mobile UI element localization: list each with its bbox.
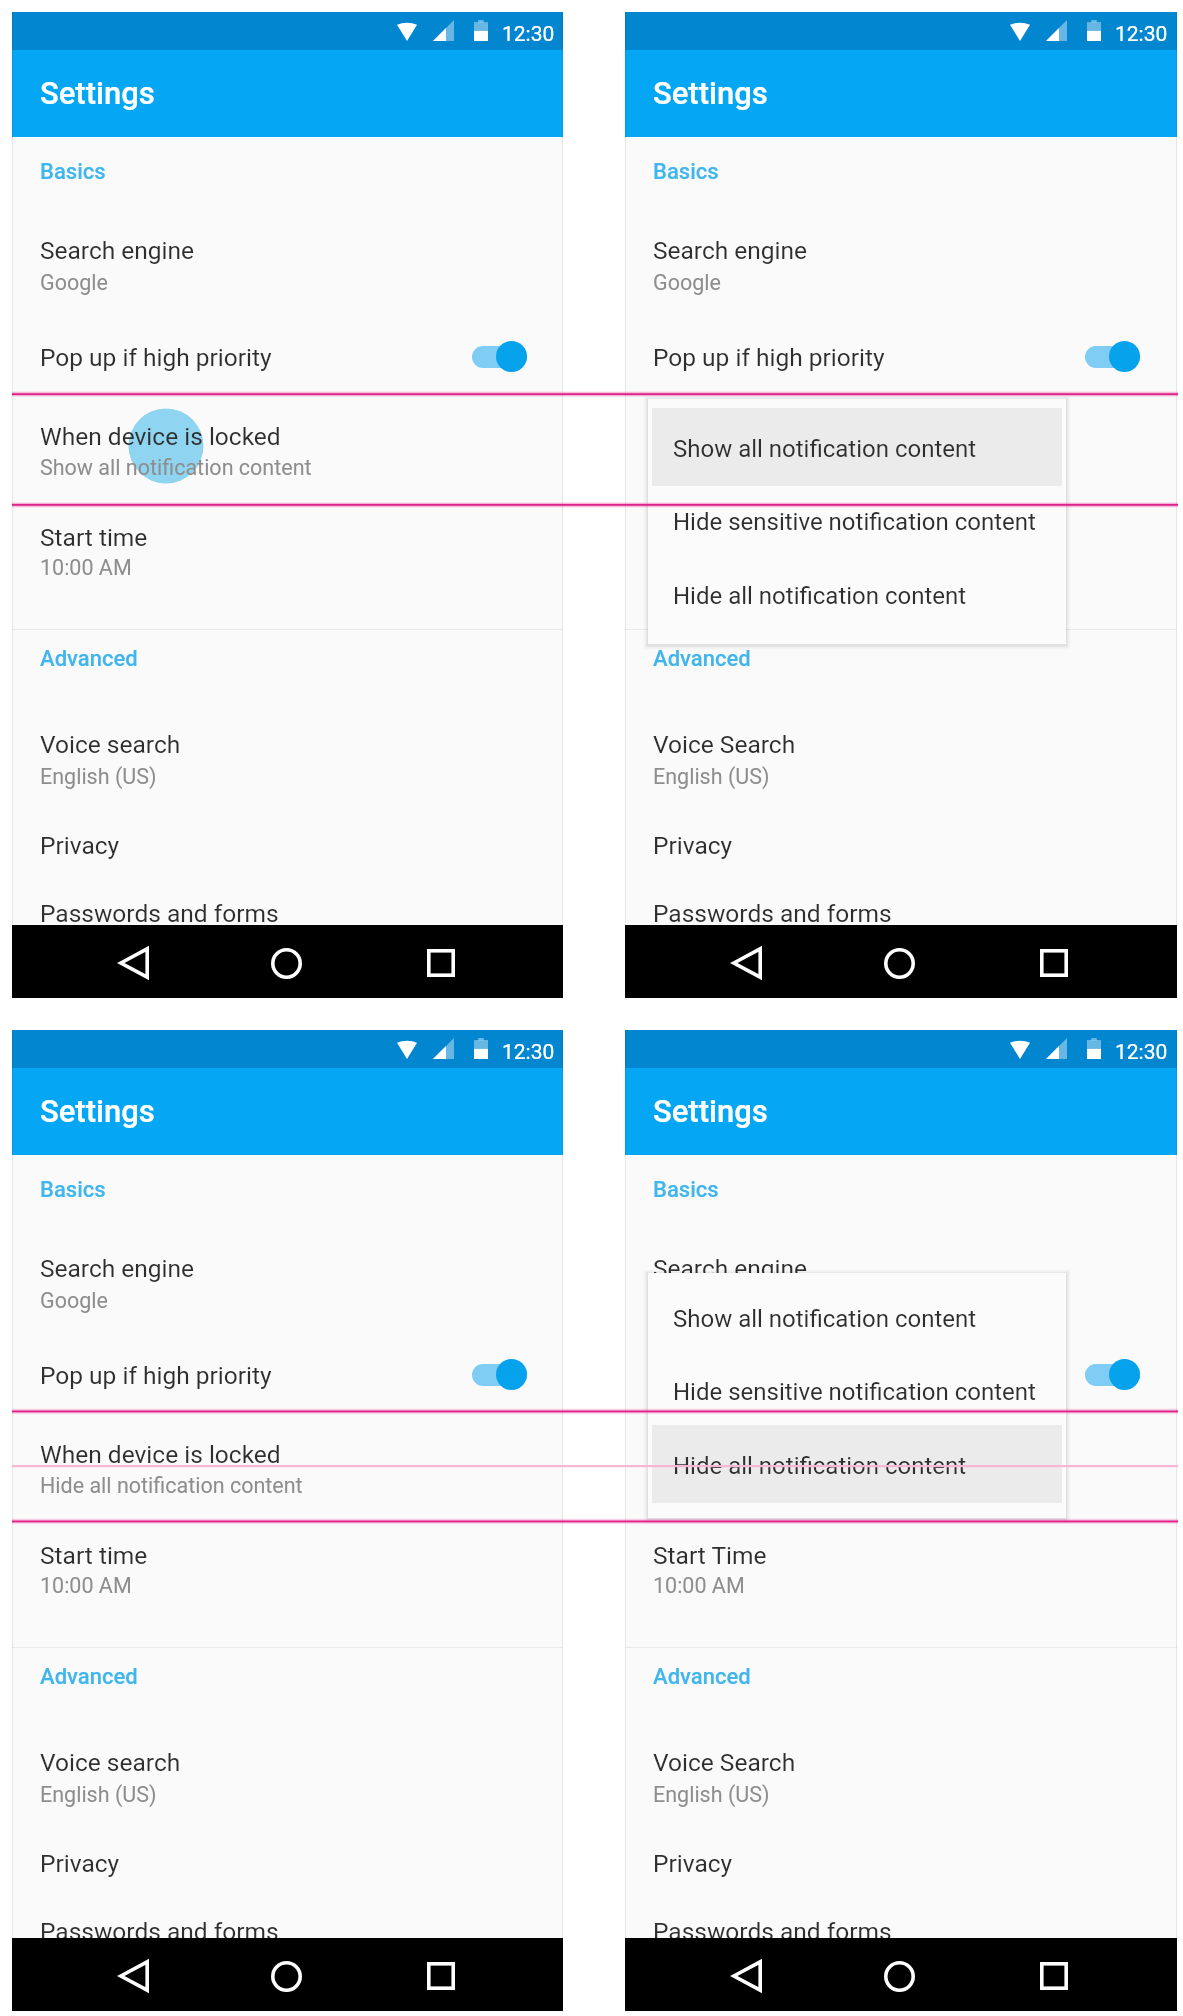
staticText: Pop up if high priority xyxy=(653,1361,885,1390)
button[interactable] xyxy=(625,630,1177,702)
button[interactable] xyxy=(12,125,563,197)
button[interactable]: Recent apps xyxy=(412,934,470,992)
button[interactable] xyxy=(625,1720,1177,1824)
staticText: Voice Search xyxy=(653,1748,796,1777)
staticText: Google xyxy=(40,270,108,295)
staticText: Passwords and forms xyxy=(653,899,892,928)
button[interactable] xyxy=(12,896,563,986)
button[interactable] xyxy=(12,1824,563,1914)
button[interactable] xyxy=(625,391,1177,502)
button[interactable]: Pop up if high priority xyxy=(1077,1352,1149,1398)
button[interactable] xyxy=(625,1319,1177,1409)
staticText: Voice search xyxy=(40,1748,181,1777)
staticText: Show all notification content xyxy=(653,1473,925,1498)
button[interactable] xyxy=(648,1278,1066,1352)
button[interactable] xyxy=(12,1319,563,1409)
staticText: Voice search xyxy=(40,730,181,759)
button[interactable]: Back xyxy=(105,1947,163,2005)
staticText: Hide all notification content xyxy=(40,1473,303,1498)
staticText: Show all notification content xyxy=(40,455,312,480)
staticText: English (US) xyxy=(653,1782,770,1807)
button[interactable] xyxy=(625,197,1177,301)
button[interactable] xyxy=(625,702,1177,806)
staticText: Start time xyxy=(40,1541,148,1570)
staticText: Start time xyxy=(40,523,148,552)
button[interactable] xyxy=(12,1143,563,1215)
button[interactable] xyxy=(648,482,1066,556)
staticText: 12:30 xyxy=(1115,1040,1168,1065)
staticText: Search engine xyxy=(653,236,808,265)
button[interactable] xyxy=(12,1720,563,1824)
staticText: English (US) xyxy=(40,1782,157,1807)
staticText: Privacy xyxy=(653,1849,733,1878)
staticText: Google xyxy=(653,1288,721,1313)
button[interactable] xyxy=(625,1409,1177,1520)
button[interactable] xyxy=(648,1425,1066,1499)
button[interactable] xyxy=(625,1143,1177,1215)
button[interactable]: Back xyxy=(718,1947,776,2005)
staticText: Basics xyxy=(40,159,106,185)
button[interactable] xyxy=(625,125,1177,197)
button[interactable] xyxy=(625,301,1177,391)
staticText: Start time xyxy=(653,523,761,552)
button[interactable]: Back xyxy=(105,934,163,992)
staticText: Hide sensitive notification content xyxy=(673,1378,1036,1406)
button[interactable] xyxy=(12,197,563,301)
button[interactable] xyxy=(625,502,1177,629)
staticText: 10:00 AM xyxy=(40,1573,132,1598)
button[interactable]: Recent apps xyxy=(1025,934,1083,992)
staticText: Privacy xyxy=(653,831,733,860)
button[interactable] xyxy=(625,896,1177,986)
staticText: Hide all notification content xyxy=(673,1452,967,1480)
button[interactable] xyxy=(625,1824,1177,1914)
button[interactable] xyxy=(12,1914,563,2004)
button[interactable]: Pop up if high priority xyxy=(464,334,536,380)
staticText: Basics xyxy=(653,1177,719,1203)
staticText: Passwords and forms xyxy=(40,1917,279,1946)
staticText: Search engine xyxy=(653,1254,808,1283)
button[interactable] xyxy=(625,1520,1177,1647)
staticText: 12:30 xyxy=(1115,22,1168,47)
staticText: 10:00 AM xyxy=(653,1573,745,1598)
staticText: Show all notification content xyxy=(673,435,977,463)
button[interactable] xyxy=(12,1520,563,1647)
button[interactable]: Home xyxy=(870,934,928,992)
staticText: Hide sensitive notification content xyxy=(673,508,1036,536)
button[interactable] xyxy=(12,806,563,896)
button[interactable] xyxy=(625,1215,1177,1319)
button[interactable] xyxy=(12,1215,563,1319)
button[interactable]: Home xyxy=(257,1947,315,2005)
staticText: Advanced xyxy=(40,1664,138,1690)
button[interactable]: Back xyxy=(718,934,776,992)
staticText: Google xyxy=(40,1288,108,1313)
button[interactable]: Home xyxy=(257,934,315,992)
button[interactable] xyxy=(625,1914,1177,2004)
button[interactable]: Recent apps xyxy=(1025,1947,1083,2005)
button[interactable] xyxy=(648,555,1066,629)
button[interactable] xyxy=(625,1648,1177,1720)
button[interactable]: Pop up if high priority xyxy=(464,1352,536,1398)
staticText: Search engine xyxy=(40,236,195,265)
staticText: Advanced xyxy=(653,1664,751,1690)
staticText: Search engine xyxy=(40,1254,195,1283)
button[interactable] xyxy=(12,702,563,806)
button[interactable]: Pop up if high priority xyxy=(1077,334,1149,380)
staticText: Settings xyxy=(40,75,155,111)
button[interactable] xyxy=(648,408,1066,482)
staticText: When device is locked xyxy=(653,1440,894,1469)
staticText: When device is locked xyxy=(40,422,281,451)
button[interactable] xyxy=(12,1648,563,1720)
button[interactable] xyxy=(648,1352,1066,1426)
button[interactable] xyxy=(625,806,1177,896)
staticText: Start Time xyxy=(653,1541,767,1570)
button[interactable] xyxy=(12,630,563,702)
button[interactable] xyxy=(12,1409,563,1520)
button[interactable]: Home xyxy=(870,1947,928,2005)
staticText: Show all notification content xyxy=(673,1305,977,1333)
staticText: Settings xyxy=(40,1093,155,1129)
staticText: Show all notification content xyxy=(653,455,925,480)
button[interactable] xyxy=(12,391,563,502)
button[interactable] xyxy=(12,502,563,629)
button[interactable]: Recent apps xyxy=(412,1947,470,2005)
button[interactable] xyxy=(12,301,563,391)
